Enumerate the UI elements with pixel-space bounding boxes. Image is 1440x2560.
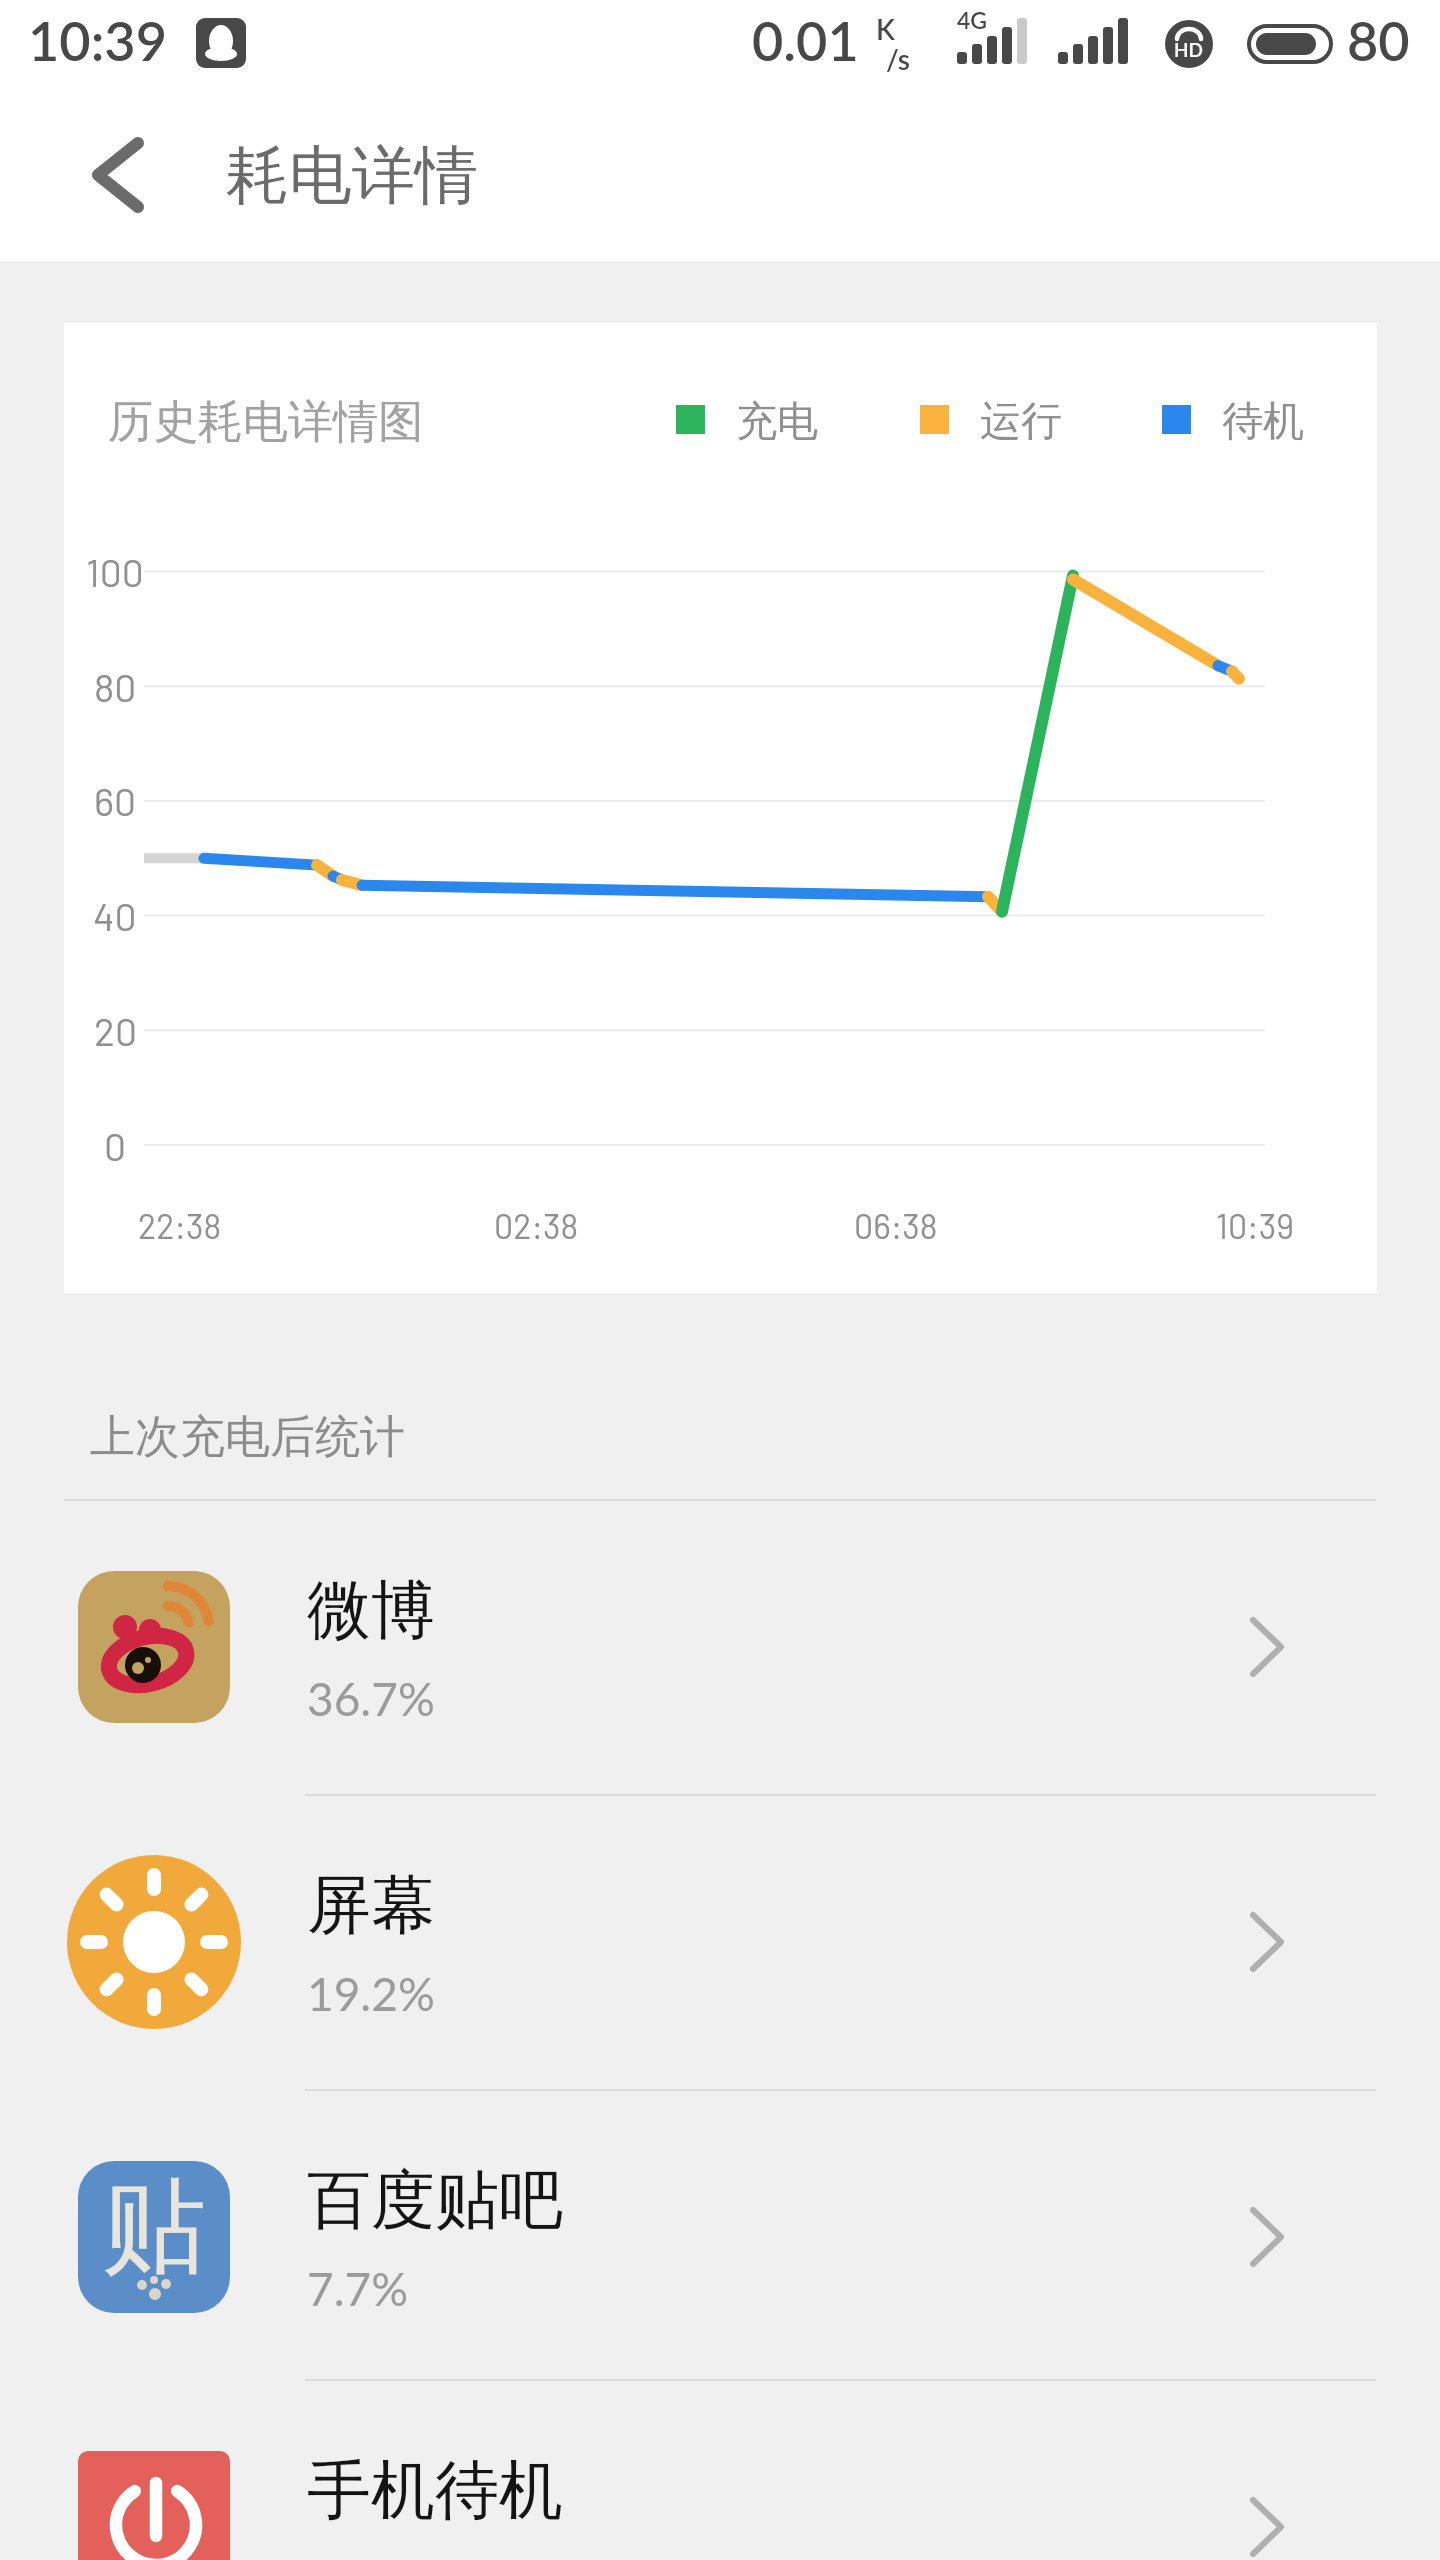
staticText: 0 — [104, 1122, 127, 1169]
button[interactable] — [64, 120, 174, 230]
staticText: 60 — [94, 777, 137, 824]
staticText: 19.2% — [307, 1966, 435, 2021]
staticText: 7.7% — [307, 2261, 409, 2316]
staticText: 36.7% — [307, 1671, 435, 1726]
staticText: 80 — [1347, 8, 1410, 72]
staticText: K — [876, 12, 895, 46]
staticText: 运行 — [980, 396, 1062, 444]
staticText: 历史耗电详情图 — [108, 394, 423, 446]
staticText: 贴 — [102, 2162, 206, 2293]
staticText: 02:38 — [494, 1205, 579, 1246]
button[interactable]: 贴 — [0, 2090, 1440, 2385]
staticText: 22:38 — [138, 1205, 222, 1246]
button[interactable]: 微博 — [0, 1500, 1440, 1795]
staticText: 耗电详情 — [226, 136, 478, 215]
staticText: HD — [1174, 38, 1204, 61]
staticText: 10:39 — [1216, 1205, 1294, 1246]
staticText: 100 — [86, 548, 144, 595]
staticText: 06:38 — [854, 1205, 938, 1246]
staticText: 4G — [957, 6, 988, 34]
button[interactable]: 手机待机 — [0, 2380, 1440, 2560]
staticText: 充电 — [736, 396, 818, 444]
staticText: 80 — [94, 663, 137, 710]
button[interactable]: 屏幕 — [0, 1795, 1440, 2090]
staticText: 屏幕 — [307, 1865, 435, 1946]
staticText: 百度贴吧 — [307, 2160, 563, 2241]
staticText: 微博 — [307, 1570, 435, 1651]
staticText: 手机待机 — [307, 2450, 563, 2531]
staticText: 0.01 — [752, 8, 859, 72]
staticText: 上次充电后统计 — [90, 1409, 405, 1465]
staticText: 待机 — [1222, 396, 1304, 444]
staticText: 40 — [93, 892, 137, 939]
staticText: 10:39 — [28, 8, 167, 72]
staticText: /s — [886, 42, 910, 76]
staticText: 20 — [94, 1007, 137, 1054]
